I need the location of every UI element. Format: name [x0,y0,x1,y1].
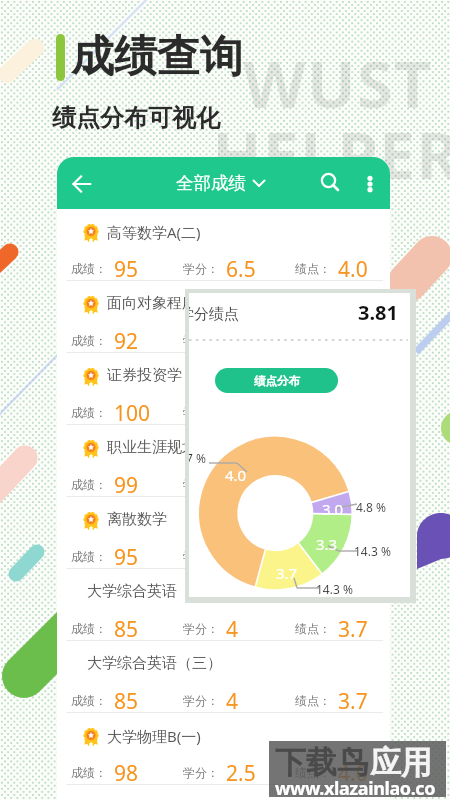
staticText: 职业生涯规划 [107,438,197,457]
staticText: 证券投资学 [107,366,182,385]
staticText: 绩点： [295,333,331,348]
staticText: 4.0 [338,255,368,279]
button[interactable]: 大学综合英语（三） [57,641,390,713]
staticText: 85 [114,615,139,639]
staticText: 大学物理B(一) [107,726,201,746]
button[interactable]: 证券投资学 [57,353,390,425]
button[interactable]: More options [350,164,390,204]
staticText: 3.0 [322,499,344,519]
staticText: 成绩： [71,693,107,708]
staticText: 14.3 % [354,543,391,559]
button[interactable]: 大学物理B(一) [57,713,390,785]
staticText: 3 [226,327,239,351]
staticText: 98 [114,759,139,783]
staticText: 85 [114,687,139,711]
staticText: 99 [114,471,139,495]
staticText: 绩点分布 [254,374,300,388]
staticText: 95 [114,543,139,567]
staticText: 面向对象程序设计 [107,294,227,313]
staticText: 4.0 [338,471,368,495]
button[interactable]: 职业生涯规划 [57,425,390,497]
button[interactable]: 面向对象程序设计 [57,281,390,353]
staticText: 4.0 [225,465,247,485]
staticText: 大学综合英语（三） [87,654,222,673]
staticText: 成绩： [71,261,107,276]
staticText: 6.5 [226,255,256,279]
staticText: 3.7 [338,615,368,639]
staticText: 成绩： [71,621,107,636]
staticText: 14.3 % [316,581,353,597]
staticText: 3.3 [316,534,338,554]
staticText: 绩点： [295,477,331,492]
staticText: WUST [243,39,433,128]
button[interactable]: Search [310,162,350,202]
staticText: 学分： [183,333,219,348]
staticText: 3.7 [276,563,298,583]
staticText: 3.81 [358,299,398,326]
staticText: HELPER [212,110,450,199]
staticText: 100 [114,399,151,423]
button[interactable]: 离散数学 [57,497,390,569]
staticText: 学分： [183,549,219,564]
button[interactable]: 绩点分布 [215,368,338,393]
staticText: 离散数学 [107,510,167,529]
staticText: 4.8 % [356,499,387,515]
staticText: 学分： [183,693,219,708]
staticText: 66.7 % [189,450,206,466]
staticText: 平均学分绩点 [189,305,239,324]
staticText: 4.0 [338,543,368,567]
staticText: 应用 [370,743,432,782]
button[interactable]: Back [62,164,102,204]
staticText: 大学综合英语 [87,582,177,601]
staticText: 4 [226,615,239,639]
staticText: 4.0 [338,759,368,783]
staticText: 3.7 [338,687,368,711]
staticText: 4 [226,687,239,711]
button[interactable]: 全部成绩 [176,164,266,202]
staticText: 绩点： [295,693,331,708]
staticText: 绩点分布可视化 [52,103,220,133]
staticText: 成绩： [71,549,107,564]
staticText: 学分： [183,261,219,276]
staticText: 4.0 [338,327,368,351]
staticText: 成绩查询 [71,30,243,84]
staticText: 绩点： [295,549,331,564]
button[interactable]: 高等数学A(二) [57,209,390,281]
staticText: 1 [226,471,239,495]
staticText: 高等数学A(二) [107,222,201,242]
staticText: 绩点： [295,261,331,276]
staticText: 绩点： [295,621,331,636]
staticText: 92 [114,327,139,351]
staticText: 学分： [183,405,219,420]
staticText: 成绩： [71,765,107,780]
staticText: 全部成绩 [176,172,246,194]
staticText: 2.5 [226,759,256,783]
staticText: 绩点： [295,765,331,780]
staticText: www.xlazainlao.com [275,776,450,800]
staticText: 学分： [183,765,219,780]
staticText: 学分： [183,477,219,492]
staticText: 95 [114,255,139,279]
staticText: 下载鸟 [275,743,368,782]
button[interactable]: 大学综合英语 [57,569,390,641]
staticText: 成绩： [71,477,107,492]
staticText: 成绩： [71,405,107,420]
staticText: 成绩： [71,333,107,348]
staticText: 学分： [183,621,219,636]
